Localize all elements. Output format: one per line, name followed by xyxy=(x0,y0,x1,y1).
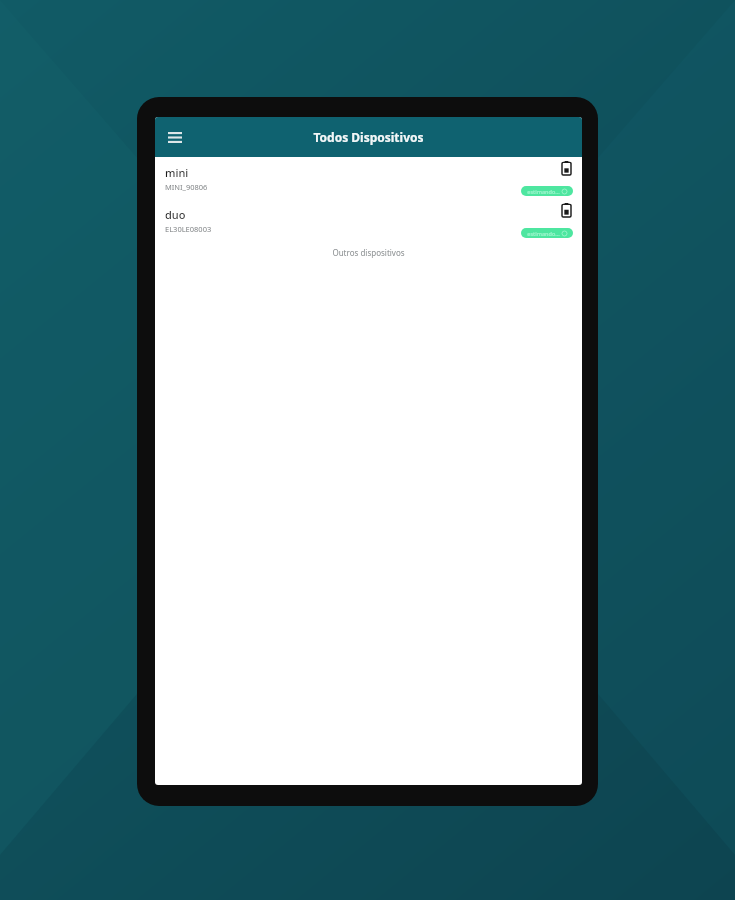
button[interactable]: Open navigation menu xyxy=(163,125,187,149)
staticText: estimando... xyxy=(527,188,560,195)
staticText: Outros dispositivos xyxy=(332,247,405,258)
staticText: estimando... xyxy=(527,230,560,237)
staticText: Todos Dispositivos xyxy=(313,129,424,145)
button[interactable]: estimando... xyxy=(521,228,573,238)
button[interactable]: mini xyxy=(155,157,582,199)
button[interactable]: duo xyxy=(155,199,582,241)
other: Battery level xyxy=(560,202,572,218)
staticText: mini xyxy=(165,165,189,180)
staticText: MINI_90806 xyxy=(165,182,208,192)
staticText: duo xyxy=(165,207,186,222)
staticText: EL30LE08003 xyxy=(165,224,212,234)
button[interactable]: estimando... xyxy=(521,186,573,196)
other: Battery level xyxy=(560,160,572,176)
